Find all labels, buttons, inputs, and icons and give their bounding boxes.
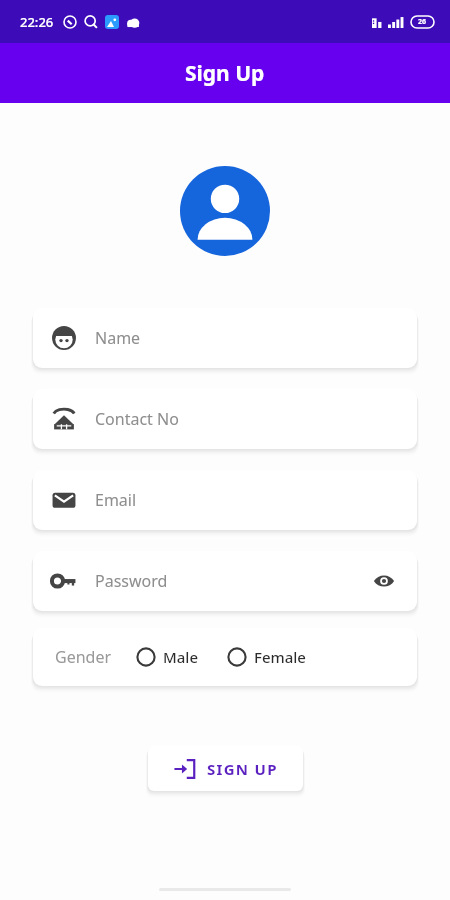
button[interactable]: Female xyxy=(227,647,306,667)
staticText: Male xyxy=(163,647,199,667)
button[interactable]: SIGN UP xyxy=(148,746,303,791)
staticText: Female xyxy=(254,647,306,667)
staticText: 26 xyxy=(418,17,427,27)
staticText: Password xyxy=(95,570,168,592)
button[interactable]: Name xyxy=(33,308,417,368)
button[interactable]: Show password xyxy=(369,566,399,596)
button[interactable]: Contact No xyxy=(33,389,417,449)
staticText: Gender xyxy=(55,646,112,668)
button[interactable]: Email xyxy=(33,470,417,530)
button[interactable]: Password xyxy=(33,551,417,611)
staticText: Name xyxy=(95,327,141,349)
staticText: Contact No xyxy=(95,408,179,430)
staticText: 22:26 xyxy=(20,13,54,31)
staticText: Sign Up xyxy=(185,59,265,88)
button[interactable]: Male xyxy=(136,647,199,667)
staticText: SIGN UP xyxy=(207,759,278,779)
staticText: Email xyxy=(95,489,137,511)
